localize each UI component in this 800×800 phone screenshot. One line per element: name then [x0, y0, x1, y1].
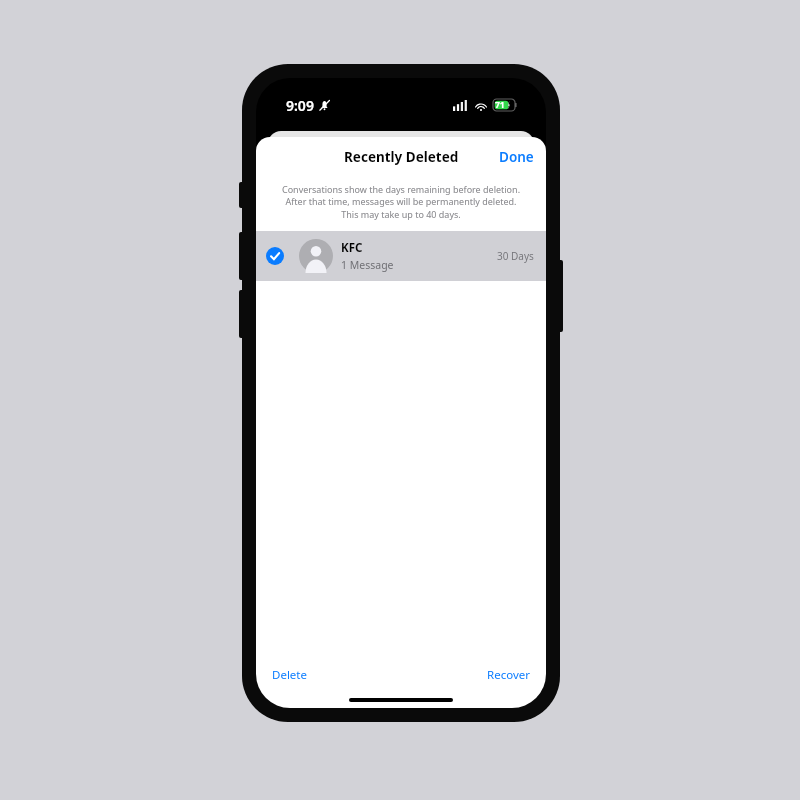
staticText: Recently Deleted: [344, 148, 459, 166]
staticText: 71: [495, 99, 505, 111]
button[interactable]: Delete: [256, 660, 323, 690]
staticText: Delete: [272, 667, 307, 683]
staticText: Conversations show the days remaining be…: [277, 183, 525, 221]
staticText: 30 Days: [497, 249, 534, 263]
staticText: Recover: [487, 667, 530, 683]
staticText: 9:09: [286, 96, 314, 115]
staticText: Done: [499, 148, 534, 166]
staticText: KFC: [341, 240, 363, 256]
button[interactable]: Done: [487, 142, 546, 172]
staticText: 1 Message: [341, 258, 394, 272]
button[interactable]: Recover: [471, 660, 546, 690]
button[interactable]: KFC: [256, 231, 546, 281]
